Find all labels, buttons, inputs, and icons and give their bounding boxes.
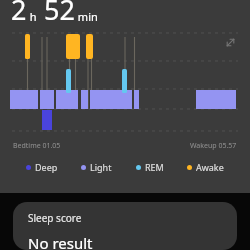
staticText: 2 xyxy=(11,0,27,28)
staticText: Deep xyxy=(35,161,58,173)
staticText: Wakeup 05.57 xyxy=(190,141,237,151)
staticText: min xyxy=(75,9,98,24)
staticText: No result xyxy=(28,233,93,250)
button[interactable]: Awake xyxy=(187,161,224,173)
staticText: Bedtime 01.05 xyxy=(13,141,61,151)
button[interactable]: REM xyxy=(136,161,164,173)
staticText: Sleep score xyxy=(28,211,82,225)
staticText: Awake xyxy=(196,161,224,173)
button[interactable]: Deep xyxy=(26,161,58,173)
button[interactable]: Sleep score xyxy=(13,202,237,250)
staticText: REM xyxy=(145,161,164,173)
staticText: h xyxy=(27,9,37,24)
button[interactable]: Light xyxy=(81,161,112,173)
staticText: 52 xyxy=(37,0,75,28)
button[interactable]: Expand sleep chart xyxy=(219,31,241,53)
staticText: Light xyxy=(90,161,112,173)
